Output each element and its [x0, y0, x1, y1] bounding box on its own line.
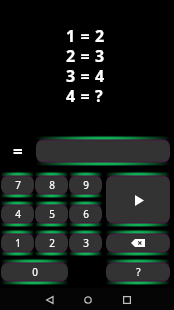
button[interactable]: 8 — [35, 172, 68, 198]
button[interactable]: ? — [106, 259, 170, 285]
button[interactable]: 2 — [35, 230, 68, 256]
staticText: 4 — [15, 207, 21, 221]
button[interactable]: 4 — [1, 201, 34, 227]
staticText: 7 — [15, 178, 21, 192]
staticText: = — [13, 140, 23, 160]
staticText: 2 = 3 — [66, 45, 105, 65]
staticText: 2 — [49, 236, 55, 250]
staticText: ? — [136, 265, 141, 279]
staticText: 1 — [15, 236, 21, 250]
button[interactable]: 6 — [69, 201, 102, 227]
staticText: 0 — [32, 265, 38, 279]
button[interactable]: Back — [34, 290, 64, 310]
staticText: 8 — [49, 178, 55, 192]
staticText: 9 — [83, 178, 89, 192]
staticText: 1 = 2 — [66, 25, 105, 45]
staticText: 6 — [83, 207, 89, 221]
button[interactable]: Home — [73, 290, 103, 310]
button[interactable]: Play — [106, 172, 170, 227]
staticText: 5 — [49, 207, 55, 221]
staticText: 3 = 4 — [66, 65, 105, 85]
button[interactable]: Recents — [112, 290, 142, 310]
button[interactable]: 7 — [1, 172, 34, 198]
button[interactable]: 3 — [69, 230, 102, 256]
staticText: 4 = ? — [66, 85, 104, 105]
staticText: 3 — [83, 236, 89, 250]
button[interactable]: Answer input — [36, 136, 170, 166]
button[interactable]: 9 — [69, 172, 102, 198]
button[interactable]: 1 — [1, 230, 34, 256]
button[interactable]: Backspace — [106, 230, 170, 256]
button[interactable]: 5 — [35, 201, 68, 227]
button[interactable]: 0 — [1, 259, 68, 285]
